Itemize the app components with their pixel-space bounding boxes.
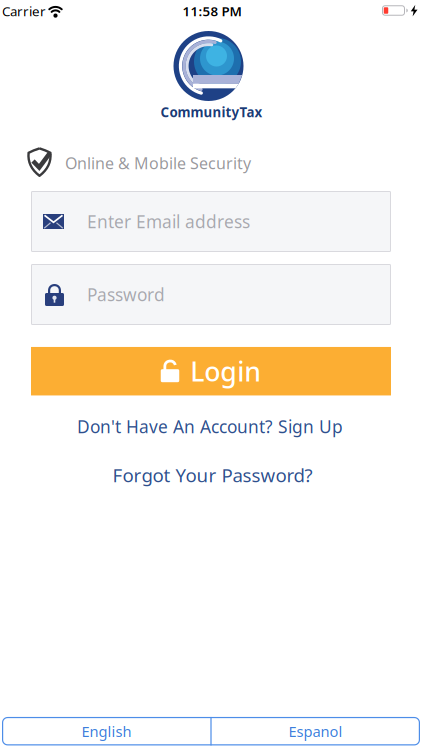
button[interactable]: Forgot Your Password? (112, 463, 312, 487)
staticText: Espanol (288, 721, 342, 741)
button[interactable]: Login (31, 347, 391, 395)
button[interactable]: English (3, 717, 210, 745)
staticText: Password (87, 283, 165, 306)
button[interactable]: Password (31, 264, 391, 325)
staticText: CommunityTax (160, 103, 262, 121)
button[interactable]: Enter Email address (31, 191, 391, 252)
staticText: English (81, 721, 131, 741)
staticText: 11:58 PM (182, 2, 241, 20)
staticText: Login (190, 353, 261, 389)
staticText: Forgot Your Password? (112, 463, 312, 487)
button[interactable]: Don't Have An Account? Sign Up (77, 415, 343, 438)
button[interactable]: Espanol (212, 717, 419, 745)
staticText: Enter Email address (87, 210, 250, 233)
staticText: Carrier (2, 2, 46, 20)
staticText: Don't Have An Account? Sign Up (77, 415, 343, 438)
staticText: Online & Mobile Security (65, 152, 251, 174)
